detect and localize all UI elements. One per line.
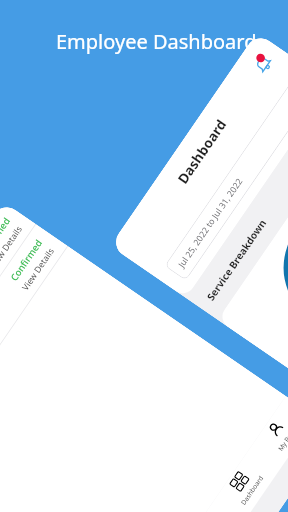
staticText: Service Breakdown [204,216,269,303]
staticText: Dashboard [239,474,265,506]
staticText: View Details [0,223,24,270]
button[interactable]: Notifications [247,48,277,78]
button[interactable]: Jul 25, 2022 to Jul 31, 2022 [164,76,288,281]
staticText: Jul 25, 2022 to Jul 31, 2022 [175,176,245,269]
staticText: Dashboard [173,116,231,187]
staticText: Employee Dashboard [56,28,257,55]
button[interactable]: Dashboard [213,450,276,512]
button[interactable]: My Profile [250,398,288,467]
staticText: Confirmed [7,237,45,283]
staticText: My Profile [276,422,288,452]
button[interactable]: Lawn Care Service [0,224,68,459]
staticText: View Details [19,245,56,292]
staticText: Confirmed [0,215,13,261]
button[interactable]: Lawn Care Service [0,202,35,437]
